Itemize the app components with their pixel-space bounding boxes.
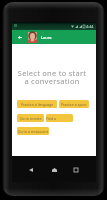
staticText: Practice a language [21,102,54,107]
button[interactable]: Back [24,163,38,176]
staticText: 4:44 [86,24,94,29]
button[interactable]: Go to movies [17,114,44,122]
button[interactable]: Practice a language [17,100,57,108]
button[interactable]: Home [47,163,61,176]
staticText: Laura [41,35,52,40]
button[interactable]: Find a wingman? [46,114,73,122]
staticText: Go to movies [20,116,42,121]
staticText: Find a wingman? [46,116,73,121]
staticText: Go to a restaurant [18,129,48,134]
staticText: Select one to start a conversation [10,68,94,87]
button[interactable]: Back [14,30,25,44]
button[interactable]: Recent apps [69,163,83,176]
button[interactable]: Practice a sport [59,100,89,108]
staticText: Practice a sport [61,102,87,107]
button[interactable]: Go to a restaurant [17,127,49,135]
